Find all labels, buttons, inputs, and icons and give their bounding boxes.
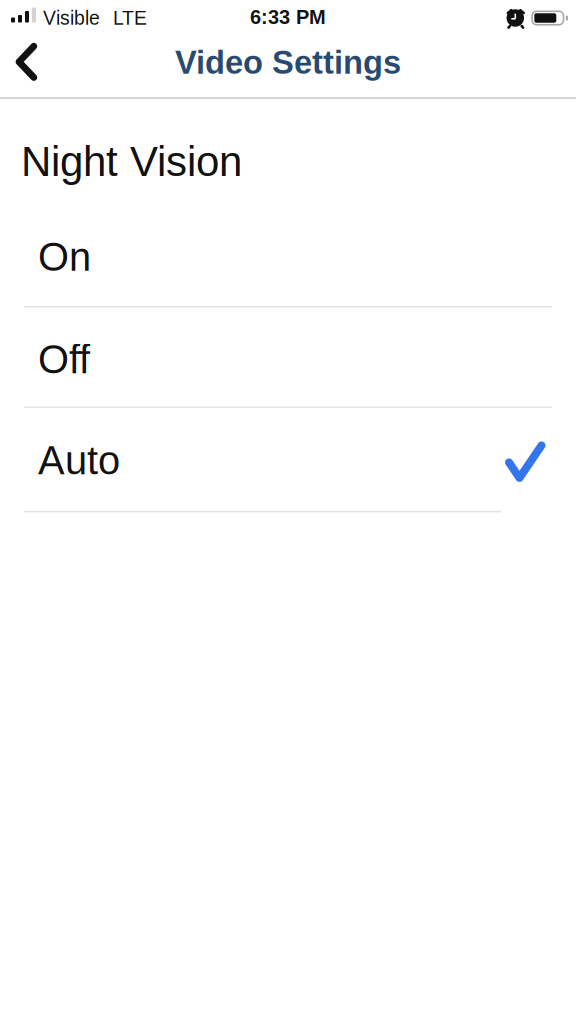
button[interactable]: Off [0, 307, 576, 406]
staticText: 6:33 PM [250, 6, 326, 28]
button[interactable]: Auto [0, 408, 576, 511]
button[interactable]: On [0, 208, 576, 306]
staticText: Auto [38, 438, 120, 483]
staticText: Visible [43, 7, 100, 29]
staticText: Video Settings [175, 44, 401, 81]
staticText: Night Vision [21, 138, 242, 185]
staticText: On [38, 235, 91, 279]
staticText: LTE [113, 7, 147, 29]
button[interactable]: Back [0, 31, 53, 92]
staticText: Off [38, 337, 90, 382]
